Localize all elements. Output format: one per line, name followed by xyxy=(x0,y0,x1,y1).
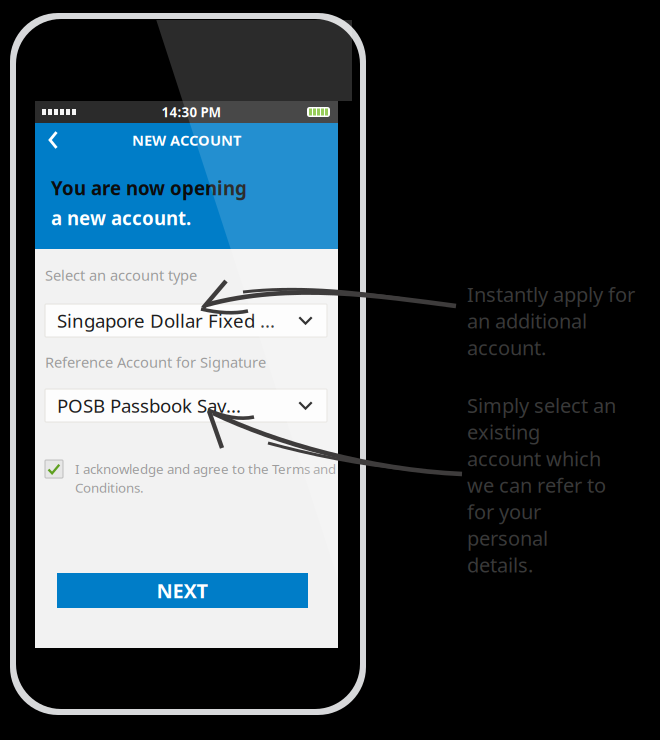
staticText: NEXT xyxy=(156,577,208,604)
staticText: Reference Account for Signature xyxy=(45,352,266,372)
staticText: I acknowledge and agree to the Terms and xyxy=(75,460,336,478)
button[interactable]: Singapore Dollar Fixed ... xyxy=(45,304,327,337)
button[interactable]: POSB Passbook Sav... xyxy=(45,389,327,422)
button[interactable]: I acknowledge and agree to the Terms and xyxy=(45,460,335,496)
staticText: Singapore Dollar Fixed ... xyxy=(57,308,275,333)
staticText: Simply select an existing account which … xyxy=(467,392,616,578)
staticText: You are now opening xyxy=(51,176,247,200)
staticText: a new account. xyxy=(51,205,191,230)
staticText: Conditions. xyxy=(75,479,144,496)
button[interactable]: Back xyxy=(35,123,71,157)
staticText: Select an account type xyxy=(45,265,197,285)
staticText: POSB Passbook Sav... xyxy=(57,393,241,418)
staticText: NEW ACCOUNT xyxy=(132,130,241,150)
button[interactable]: NEXT xyxy=(57,573,308,608)
staticText: 14:30 PM xyxy=(161,103,221,121)
staticText: Instantly apply for an additional accoun… xyxy=(467,281,635,361)
